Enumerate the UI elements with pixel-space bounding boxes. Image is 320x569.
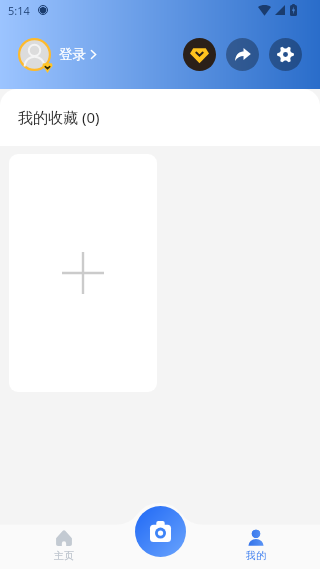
- staticText: 我的收藏 (0): [18, 107, 100, 127]
- button[interactable]: Camera: [135, 506, 186, 557]
- button[interactable]: Settings: [269, 38, 302, 71]
- button[interactable]: [9, 154, 157, 392]
- staticText: 我的: [246, 549, 266, 562]
- button[interactable]: Share: [226, 38, 259, 71]
- button[interactable]: 主页: [0, 524, 128, 569]
- staticText: 5:14: [8, 3, 30, 18]
- staticText: 主页: [54, 549, 74, 562]
- button[interactable]: 登录: [18, 38, 96, 71]
- button[interactable]: 我的: [192, 524, 320, 569]
- button[interactable]: VIP: [183, 38, 216, 71]
- staticText: 登录: [59, 46, 86, 63]
